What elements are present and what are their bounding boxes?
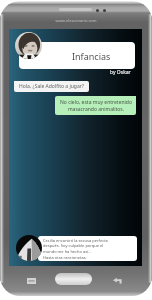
button[interactable]: Hola, ¿Sale Adolfito a jugar?	[14, 81, 89, 92]
button[interactable]: Infancias	[19, 42, 135, 69]
button[interactable]: Home	[55, 273, 92, 285]
button[interactable]: Back	[113, 277, 122, 284]
button[interactable]: Menu	[27, 278, 36, 284]
staticText: www.elescenario.com	[41, 18, 111, 23]
button[interactable]: No cielo, esta muy entretenido masacrand…	[55, 96, 136, 115]
staticText: Hola, ¿Sale Adolfito a jugar?	[19, 83, 84, 90]
staticText: No cielo, esta muy entretenido masacrand…	[60, 99, 132, 113]
other: Sender photo	[16, 235, 42, 261]
staticText: Infancias	[72, 50, 111, 62]
other: Contact photo	[15, 32, 42, 59]
staticText: by Oskar	[110, 69, 131, 76]
button[interactable]: Cecilia encontró la excusa perfecta desp…	[38, 236, 137, 261]
staticText: Cecilia encontró la excusa perfecta desp…	[43, 238, 108, 260]
